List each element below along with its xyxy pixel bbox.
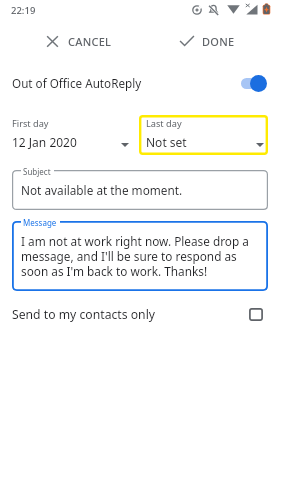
button[interactable] [236,73,267,93]
button[interactable]: Not available at the moment. [12,170,268,210]
staticText: Out of Office AutoReply [12,75,142,91]
button[interactable]: DONE [172,29,243,53]
staticText: Send to my contacts only [12,306,155,323]
staticText: Not available at the moment. [21,182,183,198]
other: Wifi [227,5,240,14]
other: Ringer silent [207,3,220,16]
staticText: Not set [146,134,187,150]
button[interactable]: Send to my contacts only [0,299,281,329]
other: Data saver [192,5,202,15]
other: Signal [245,3,258,15]
staticText: I am not at work right now. Please drop … [21,233,249,279]
button[interactable]: I am not at work right now. Please drop … [12,221,268,291]
button[interactable]: Last day [139,115,268,155]
staticText: CANCEL [68,34,112,49]
staticText: Last day [146,117,182,130]
button[interactable]: CANCEL [39,29,120,53]
staticText: Subject [23,166,51,177]
button[interactable]: First day [12,115,130,155]
staticText: Message [23,217,57,228]
staticText: DONE [202,34,235,49]
staticText: 12 Jan 2020 [12,134,77,150]
staticText: First day [12,117,49,130]
staticText: 22:19 [11,4,36,17]
button[interactable]: Out of Office AutoReply [0,66,281,100]
other: Battery [262,3,271,15]
